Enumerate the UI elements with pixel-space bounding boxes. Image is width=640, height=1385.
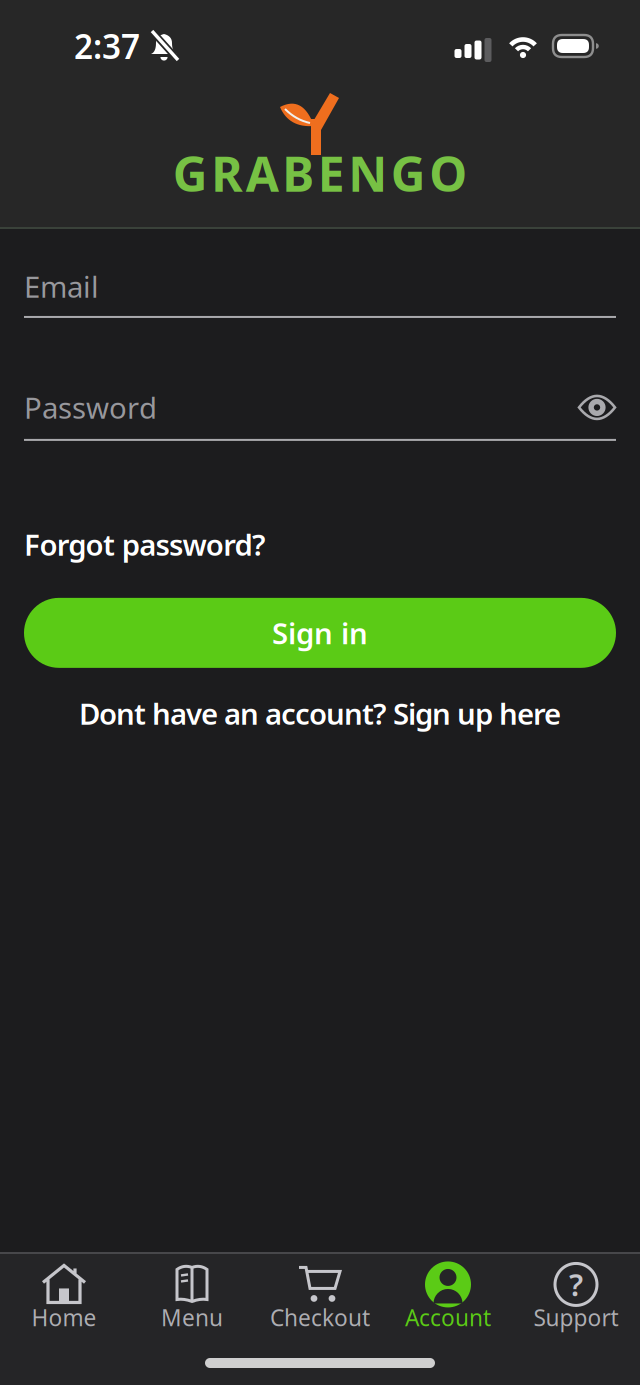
staticText: 2:37 [74,24,140,68]
staticText: Sign in [272,613,368,652]
button[interactable]: Forgot password? [24,525,266,564]
staticText: Dont have an account? Sign up here [79,694,561,733]
button[interactable]: ? [512,1262,640,1340]
staticText: ? [569,1264,583,1305]
staticText: Menu [161,1302,223,1332]
staticText: Checkout [270,1302,370,1332]
staticText: Account [405,1302,491,1332]
staticText: Home [31,1302,96,1332]
button[interactable]: Dont have an account? Sign up here [24,694,616,733]
button[interactable]: Home [0,1262,128,1340]
button[interactable]: Checkout [256,1262,384,1340]
button[interactable]: Sign in [24,598,616,668]
staticText: Email [24,267,99,306]
button[interactable]: Show password [578,394,616,420]
button[interactable]: Menu [128,1262,256,1340]
button[interactable]: Account [384,1262,512,1340]
staticText: Password [24,388,157,427]
staticText: GRABENGO [173,141,467,205]
staticText: Support [533,1302,618,1332]
staticText: Forgot password? [24,525,266,564]
